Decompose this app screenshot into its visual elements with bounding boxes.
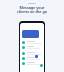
staticText: INBOX	[28, 1, 36, 4]
staticText: Message your clients on the go	[17, 5, 47, 14]
button[interactable]: INBOX	[27, 1, 37, 4]
